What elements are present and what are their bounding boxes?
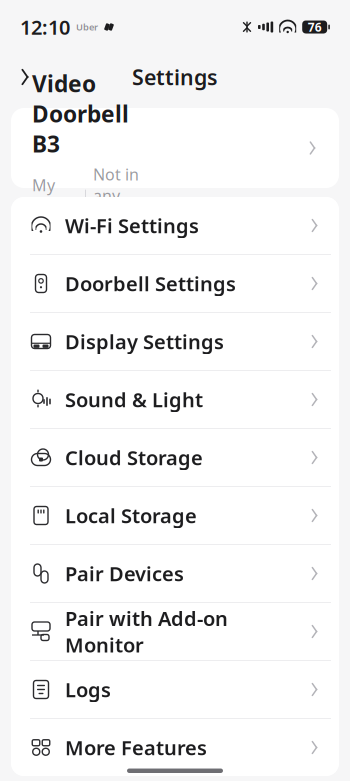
staticText: Uber <box>76 21 98 33</box>
staticText: Cloud Storage <box>65 444 203 471</box>
staticText: Video Doorbell B3 <box>32 68 129 159</box>
button[interactable]: Pair Devices <box>11 545 339 603</box>
button[interactable]: Sound & Light <box>11 371 339 429</box>
button[interactable]: Video Doorbell B3 <box>11 108 339 188</box>
staticText: Pair Devices <box>65 560 184 587</box>
staticText: Wi-Fi Settings <box>65 212 199 239</box>
button[interactable]: Logs <box>11 661 339 719</box>
button[interactable]: Display Settings <box>11 313 339 371</box>
staticText: Sound & Light <box>65 386 203 413</box>
staticText: More Features <box>65 734 207 761</box>
staticText: 76 <box>308 19 322 35</box>
button[interactable]: Doorbell Settings <box>11 255 339 313</box>
staticText: Local Storage <box>65 502 197 529</box>
staticText: 12:10 <box>20 14 70 40</box>
staticText: Display Settings <box>65 328 224 355</box>
staticText: Doorbell Settings <box>65 270 236 297</box>
button[interactable]: Wi-Fi Settings <box>11 197 339 255</box>
button[interactable]: Cloud Storage <box>11 429 339 487</box>
staticText: Logs <box>65 676 111 703</box>
staticText: Pair with Add-on Monitor <box>65 605 228 658</box>
button[interactable]: Back <box>8 60 42 94</box>
staticText: My Home <box>32 174 78 217</box>
staticText: Not in any room <box>93 164 139 227</box>
button[interactable]: More Features <box>11 719 339 776</box>
button[interactable]: Pair with Add-on Monitor <box>11 603 339 661</box>
button[interactable]: Local Storage <box>11 487 339 545</box>
staticText: Settings <box>132 63 218 91</box>
